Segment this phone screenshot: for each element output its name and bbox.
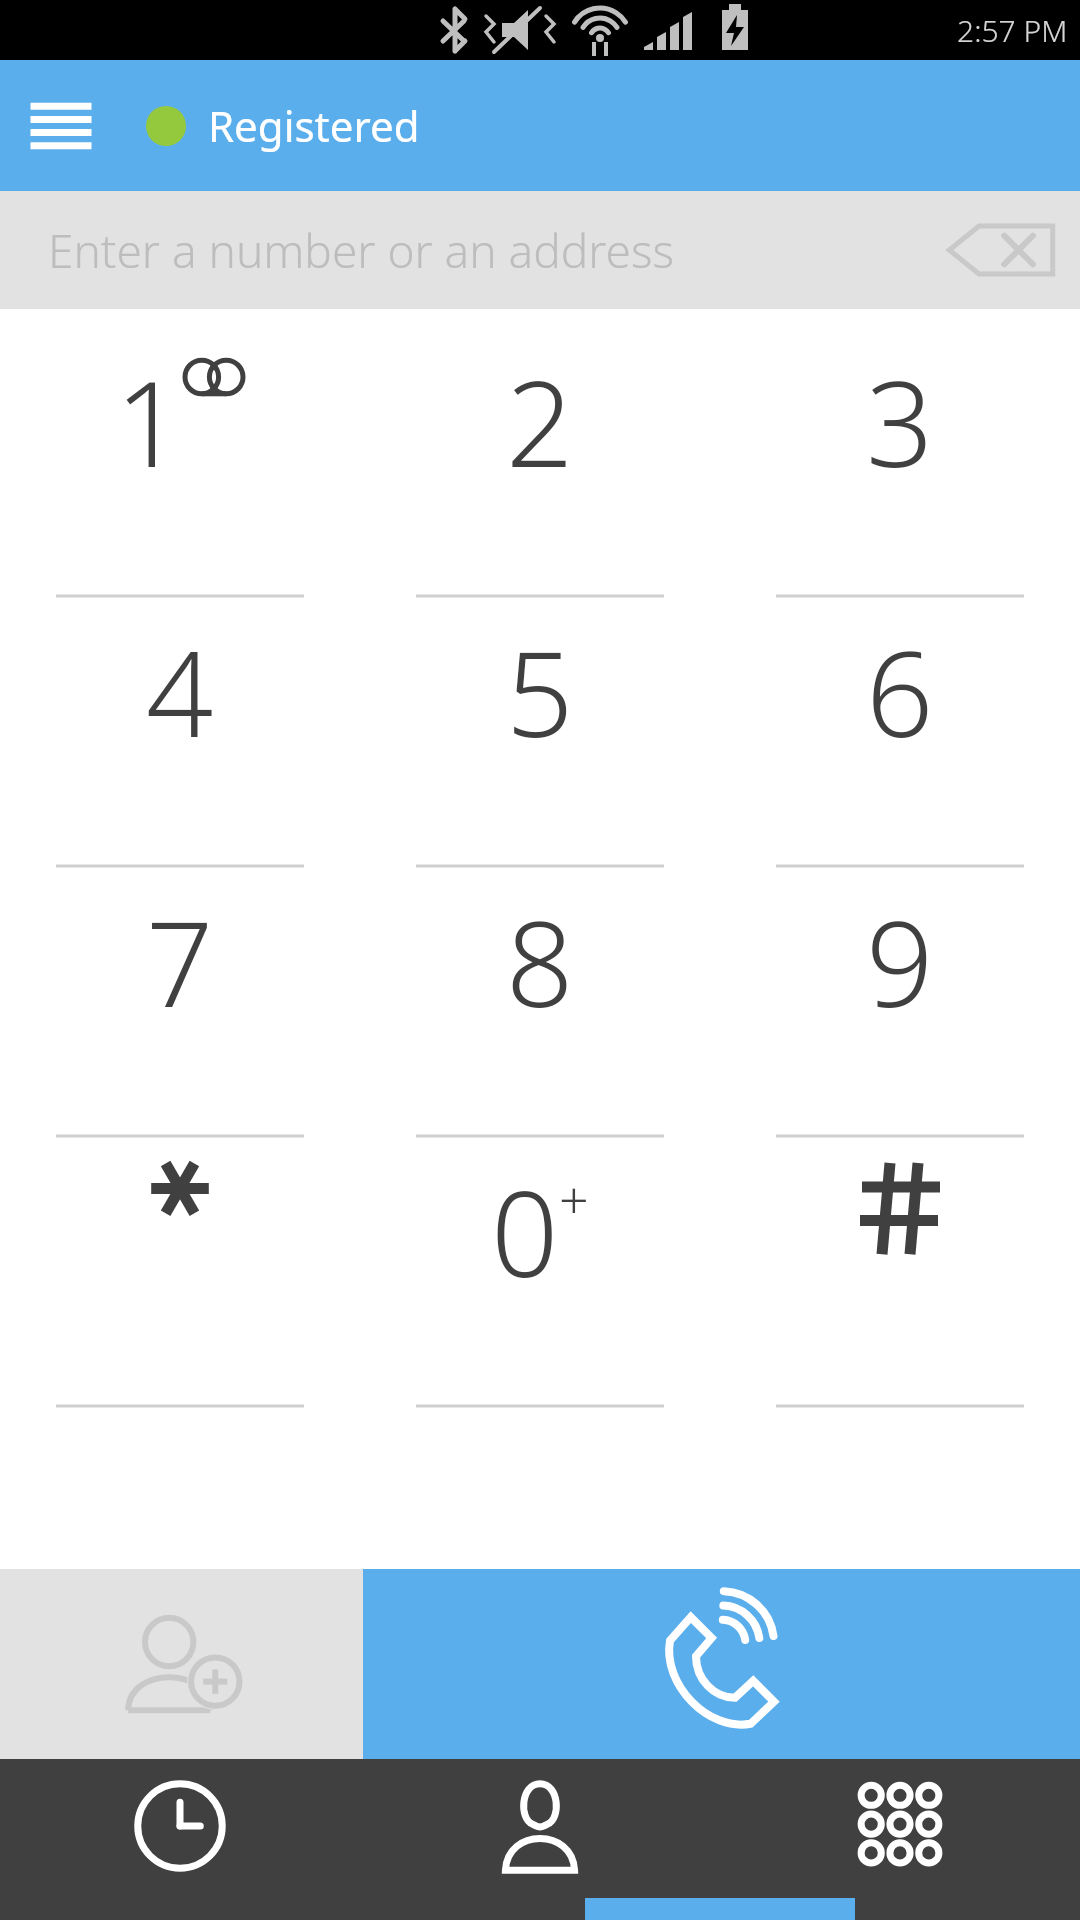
button[interactable]: Recent calls (0, 1759, 360, 1920)
button[interactable]: Open navigation menu (20, 85, 102, 167)
button[interactable]: Backspace (946, 210, 1056, 290)
button[interactable]: Add contact (0, 1569, 363, 1759)
staticText: 2:57 PM (957, 10, 1068, 51)
button[interactable]: Enter a number or an address (0, 191, 1080, 309)
button[interactable]: Dialpad (720, 1759, 1080, 1920)
staticText: 8 (506, 881, 574, 1042)
button[interactable]: Call (363, 1569, 1080, 1759)
button[interactable]: 9 (720, 871, 1080, 1141)
button[interactable]: 2 (360, 331, 720, 601)
button[interactable]: 4 (0, 601, 360, 871)
button[interactable]: 3 (720, 331, 1080, 601)
button[interactable] (720, 1141, 1080, 1411)
staticText: 5 (506, 611, 574, 772)
staticText: 3 (866, 341, 934, 502)
staticText: 4 (146, 611, 214, 772)
button[interactable]: 7 (0, 871, 360, 1141)
staticText: Registered (208, 97, 420, 154)
button[interactable]: 0 (360, 1141, 720, 1411)
button[interactable] (0, 1141, 360, 1411)
button[interactable]: 8 (360, 871, 720, 1141)
staticText: 7 (146, 881, 214, 1042)
staticText: 6 (866, 611, 934, 772)
button[interactable]: 5 (360, 601, 720, 871)
button[interactable]: 6 (720, 601, 1080, 871)
staticText: 9 (866, 881, 934, 1042)
staticText: 1 (115, 341, 183, 502)
staticText: Enter a number or an address (48, 219, 675, 282)
button[interactable]: 1 (0, 331, 360, 601)
button[interactable]: Contacts (360, 1759, 720, 1920)
staticText: + (559, 1163, 589, 1234)
staticText: 2 (506, 341, 574, 502)
staticText: 0 (491, 1151, 559, 1312)
